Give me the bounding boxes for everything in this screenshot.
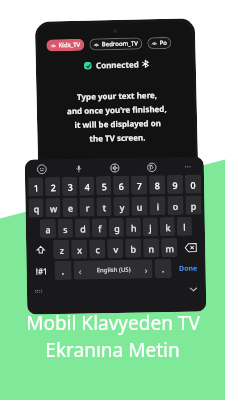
button[interactable]: k [160,217,175,236]
button[interactable]: Po [147,37,171,49]
staticText: Mobil Klavyeden TV [26,310,200,336]
staticText: w [49,202,58,214]
button[interactable]: j [143,217,158,237]
button[interactable]: q [28,198,44,218]
staticText: v [113,243,118,255]
staticText: z [59,244,64,256]
staticText: it will be displayed on [74,117,161,130]
button[interactable]: 5 [96,176,111,195]
staticText: the TV screen. [89,131,145,144]
staticText: 1 [33,181,39,193]
staticText: Connected [96,58,139,70]
staticText: ‹ [78,265,82,277]
staticText: Kids_TV [58,41,80,49]
button[interactable]: 3 [62,177,77,196]
button[interactable]: c [89,239,105,258]
staticText: b [130,243,136,255]
staticText: 0 [190,179,196,191]
button[interactable]: Done [173,258,203,278]
button[interactable]: Hide keyboard [187,283,199,295]
staticText: 5 [101,180,107,192]
staticText: h [131,222,137,234]
button[interactable]: a [40,219,56,238]
button[interactable]: 0 [185,174,201,194]
button[interactable]: g [109,218,124,237]
button[interactable]: i [149,196,166,215]
button[interactable]: y [113,197,130,216]
staticText: k [165,221,171,233]
button[interactable]: 1 [28,177,43,197]
staticText: Po [159,39,167,47]
button[interactable]: x [71,239,87,259]
button[interactable]: Keyboard layout [34,286,44,296]
staticText: m [165,242,174,254]
staticText: c [95,243,100,255]
button[interactable]: Voice input [72,161,85,175]
button[interactable]: u [131,196,148,216]
staticText: x [77,244,82,256]
button[interactable]: ‹ [73,259,153,280]
button[interactable]: 7 [131,175,147,195]
staticText: 2 [50,181,56,193]
button[interactable]: m [161,238,177,257]
staticText: Type your text here, [76,89,158,102]
button[interactable]: 8 [149,175,165,194]
staticText: Bedroom_TV [101,39,138,48]
button[interactable]: 6 [113,176,129,195]
staticText: i [156,200,160,212]
button[interactable]: o [167,196,184,215]
staticText: Ekranına Metin [45,337,180,363]
button[interactable]: t [96,197,112,216]
staticText: , [61,265,65,276]
staticText: f [98,222,102,234]
staticText: e [67,202,74,214]
button[interactable]: !#1 [29,261,53,280]
staticText: 9 [172,179,178,191]
staticText: 7 [136,179,142,192]
button[interactable]: e [62,198,78,217]
staticText: g [114,222,120,234]
button[interactable]: Translate [145,160,158,173]
staticText: 6 [118,180,124,192]
staticText: j [149,221,152,233]
button[interactable]: z [53,240,69,259]
button[interactable]: 4 [79,176,94,196]
button[interactable]: . [154,259,172,278]
button[interactable]: Settings [108,161,121,174]
button[interactable]: Backspace [179,237,202,257]
button[interactable]: l [177,217,192,236]
button[interactable]: s [58,219,73,238]
staticText: q [33,202,40,214]
staticText: u [136,200,143,213]
button[interactable]: f [92,218,107,237]
button[interactable]: Emoji [35,162,48,175]
staticText: 8 [154,179,160,191]
staticText: s [63,223,68,235]
button[interactable]: p [185,195,202,215]
button[interactable]: n [143,238,159,257]
staticText: o [172,200,179,212]
button[interactable]: r [79,197,95,217]
button[interactable]: , [54,261,72,280]
staticText: p [190,200,197,212]
staticText: l [183,221,186,233]
staticText: 3 [67,181,73,193]
button[interactable]: 2 [45,177,60,196]
button[interactable]: w [45,198,61,217]
button[interactable]: More options [181,160,194,173]
staticText: !#1 [35,265,48,276]
staticText: Done [178,264,198,274]
staticText: n [148,242,154,254]
staticText: . [161,263,165,274]
staticText: 4 [84,180,90,192]
button[interactable]: d [75,218,90,238]
button[interactable]: 9 [167,175,183,194]
button[interactable]: Kids_TV [46,39,84,52]
button[interactable]: b [125,239,141,258]
button[interactable]: v [107,239,123,258]
button[interactable]: Shift [29,240,51,259]
staticText: d [80,222,86,235]
staticText: y [119,201,125,213]
button[interactable]: h [126,218,141,237]
button[interactable]: Bedroom_TV [89,37,142,51]
